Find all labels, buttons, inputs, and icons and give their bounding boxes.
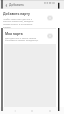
button[interactable]: Recents [47,108,53,114]
button[interactable]: Card illustration [47,15,53,21]
staticText: Добавить карту [3,11,30,15]
staticText: Моя карта [5,31,23,35]
button[interactable]: Моя карта [3,29,62,44]
staticText: Для доступа к карте нужно отправить заяв… [5,36,39,42]
button[interactable]: Back [4,3,9,8]
staticText: Добавить [9,3,24,7]
button[interactable]: Home [29,108,35,114]
button[interactable]: Back [12,108,18,114]
staticText: Чтобы получить доступ к картам клиентов,… [3,17,39,29]
